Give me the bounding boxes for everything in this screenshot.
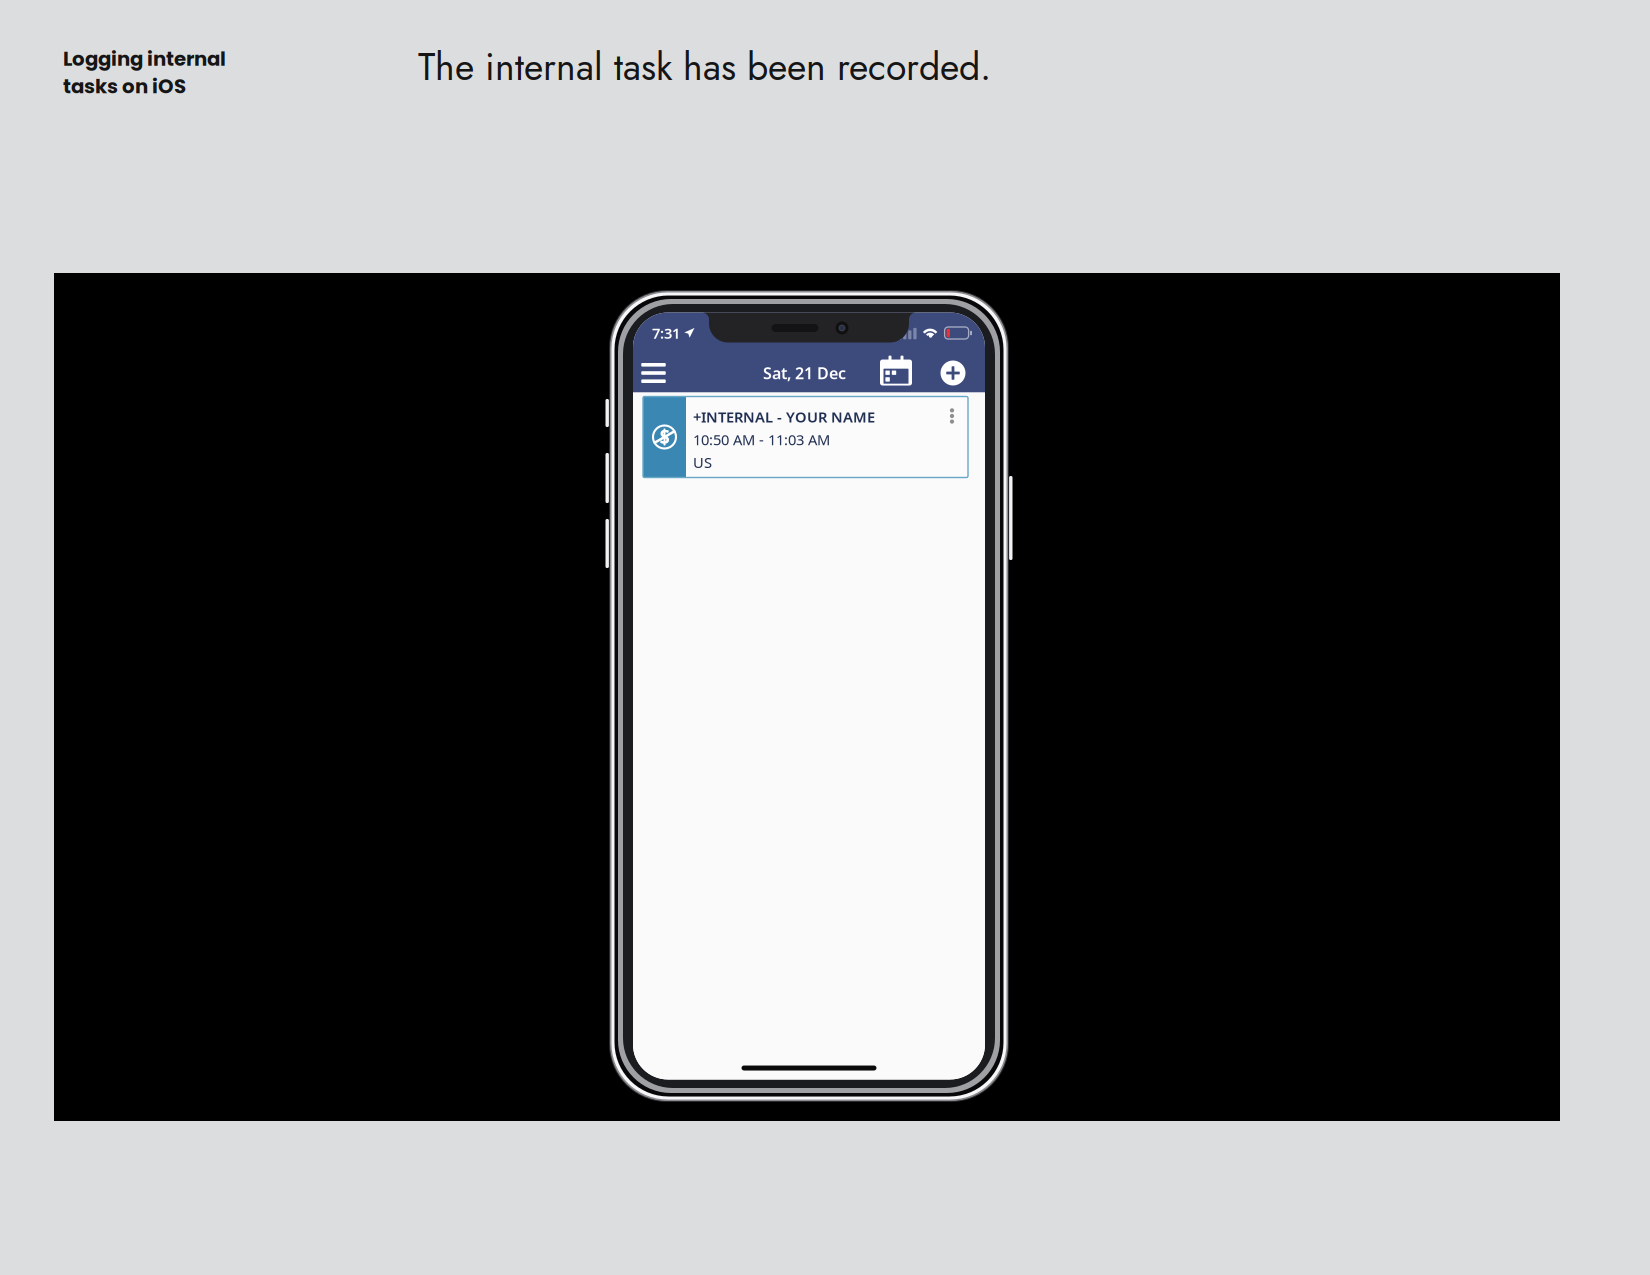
button[interactable]: Menu — [633, 353, 674, 392]
staticText: Sat, 21 Dec — [763, 362, 846, 384]
button[interactable]: S — [643, 396, 968, 477]
staticText: 7:31 — [652, 323, 680, 343]
staticText: US — [693, 452, 712, 472]
staticText: The internal task has been recorded. — [418, 40, 991, 94]
staticText: 10:50 AM - 11:03 AM — [693, 430, 830, 449]
staticText: S — [659, 424, 669, 449]
staticText: +INTERNAL - YOUR NAME — [693, 407, 875, 426]
button[interactable]: Calendar — [879, 353, 913, 392]
button[interactable]: Add entry — [939, 353, 967, 392]
staticText: Logging internal tasks on iOS — [63, 45, 226, 100]
